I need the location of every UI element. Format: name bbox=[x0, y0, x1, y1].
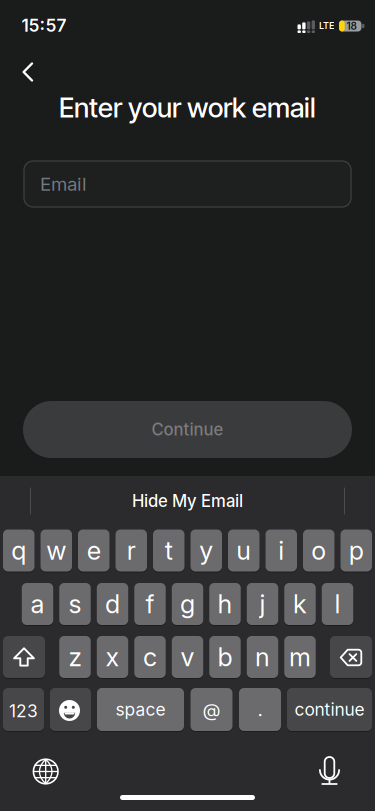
staticText: p bbox=[349, 535, 364, 566]
staticText: 18 bbox=[346, 20, 356, 32]
button[interactable]: q bbox=[3, 529, 34, 571]
button[interactable]: m bbox=[284, 636, 316, 678]
button[interactable]: space bbox=[97, 688, 184, 731]
staticText: Hide My Email bbox=[132, 491, 243, 511]
staticText: f bbox=[145, 589, 154, 619]
button[interactable]: Hide My Email bbox=[62, 483, 312, 519]
staticText: Email bbox=[40, 173, 87, 195]
staticText: continue bbox=[294, 699, 364, 720]
staticText: q bbox=[11, 535, 26, 566]
button[interactable]: Back bbox=[6, 50, 50, 94]
staticText: . bbox=[257, 698, 262, 721]
staticText: c bbox=[143, 642, 157, 672]
button[interactable]: Emoji bbox=[50, 688, 91, 731]
staticText: r bbox=[127, 535, 136, 566]
staticText: LTE bbox=[319, 20, 334, 31]
staticText: u bbox=[236, 535, 251, 566]
button[interactable]: period bbox=[239, 688, 281, 731]
button[interactable]: k bbox=[284, 583, 316, 625]
button[interactable]: y bbox=[190, 529, 222, 571]
staticText: b bbox=[217, 642, 232, 672]
staticText: d bbox=[105, 589, 120, 619]
button[interactable]: e bbox=[78, 529, 109, 571]
staticText: y bbox=[199, 535, 213, 566]
button[interactable]: n bbox=[247, 636, 278, 678]
button[interactable]: r bbox=[115, 529, 147, 571]
staticText: 15:57 bbox=[21, 15, 66, 36]
button[interactable]: i bbox=[265, 529, 297, 571]
button[interactable]: @ bbox=[190, 688, 232, 731]
button[interactable]: s bbox=[59, 583, 91, 625]
button[interactable]: b bbox=[209, 636, 241, 678]
staticText: e bbox=[87, 535, 101, 566]
staticText: 123 bbox=[9, 700, 38, 721]
button[interactable]: a bbox=[22, 583, 53, 625]
button[interactable]: x bbox=[97, 636, 128, 678]
button[interactable]: Dictate bbox=[307, 749, 351, 793]
staticText: t bbox=[165, 535, 173, 566]
button[interactable]: z bbox=[59, 636, 91, 678]
staticText: j bbox=[259, 589, 265, 619]
staticText: k bbox=[293, 589, 307, 619]
button[interactable]: p bbox=[340, 529, 372, 571]
button[interactable]: f bbox=[134, 583, 166, 625]
staticText: l bbox=[334, 589, 340, 619]
button[interactable]: 123 bbox=[3, 688, 44, 731]
button[interactable]: g bbox=[172, 583, 203, 625]
staticText: g bbox=[180, 589, 195, 619]
staticText: n bbox=[255, 642, 270, 672]
staticText: m bbox=[289, 642, 311, 672]
staticText: z bbox=[68, 642, 81, 672]
staticText: h bbox=[217, 589, 232, 619]
staticText: i bbox=[278, 535, 284, 566]
staticText: o bbox=[311, 535, 326, 566]
staticText: @ bbox=[202, 698, 220, 721]
button[interactable]: c bbox=[134, 636, 166, 678]
button[interactable]: h bbox=[209, 583, 241, 625]
button[interactable]: j bbox=[247, 583, 278, 625]
button[interactable]: Delete bbox=[330, 636, 372, 678]
staticText: a bbox=[30, 589, 44, 619]
button[interactable]: l bbox=[322, 583, 353, 625]
button[interactable]: v bbox=[172, 636, 203, 678]
staticText: Continue bbox=[151, 419, 223, 440]
staticText: Enter your work email bbox=[59, 91, 316, 124]
button[interactable]: continue bbox=[287, 688, 372, 731]
button[interactable]: Continue bbox=[23, 401, 352, 458]
button[interactable]: Shift bbox=[3, 636, 45, 678]
button[interactable]: Email bbox=[24, 161, 351, 207]
button[interactable]: t bbox=[153, 529, 184, 571]
button[interactable]: Next keyboard bbox=[24, 749, 68, 793]
staticText: s bbox=[68, 589, 81, 619]
button[interactable]: w bbox=[40, 529, 72, 571]
button[interactable]: o bbox=[303, 529, 334, 571]
staticText: space bbox=[115, 699, 165, 720]
staticText: w bbox=[46, 535, 66, 566]
staticText: v bbox=[180, 642, 194, 672]
button[interactable]: u bbox=[228, 529, 259, 571]
staticText: x bbox=[105, 642, 119, 672]
button[interactable]: d bbox=[97, 583, 128, 625]
